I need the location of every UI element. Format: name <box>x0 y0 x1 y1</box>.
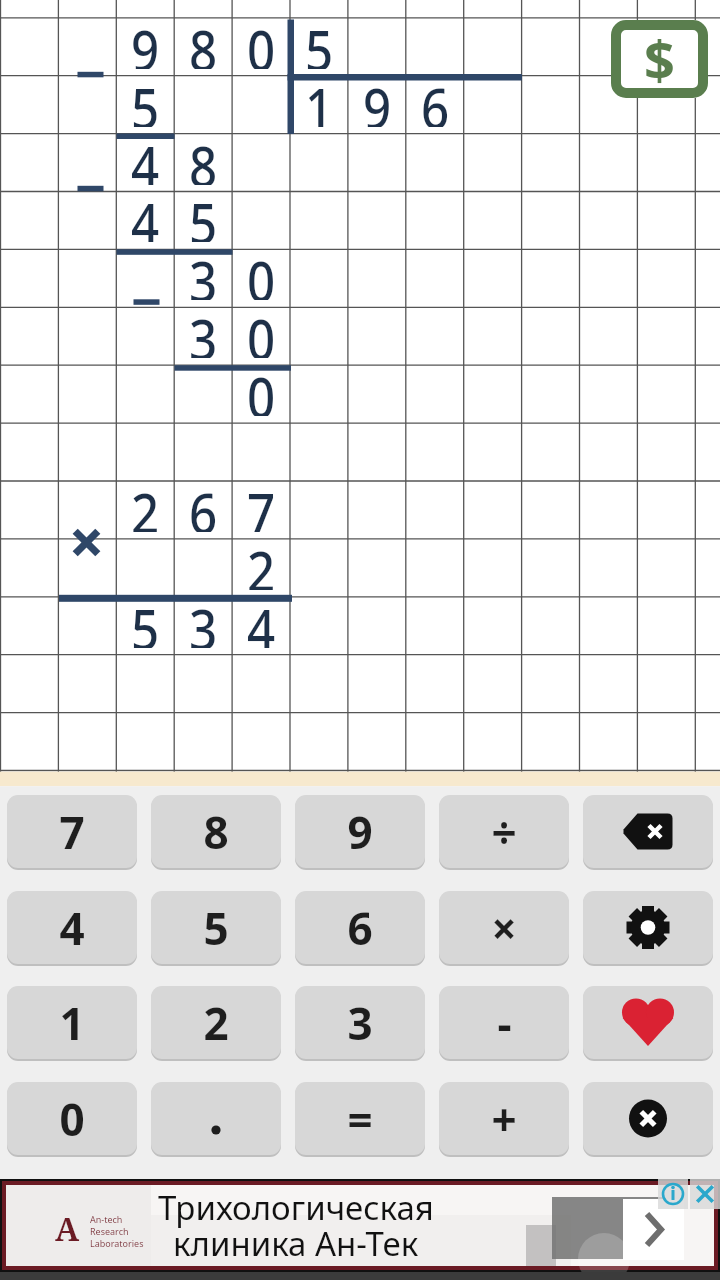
staticText: Laboratories <box>90 1237 144 1249</box>
button[interactable]: 3 <box>295 986 425 1059</box>
button[interactable]: 1 <box>7 986 137 1059</box>
staticText: 4 <box>131 184 160 242</box>
staticText: 8 <box>203 802 229 862</box>
button[interactable]: 9 <box>295 795 425 868</box>
staticText: ÷ <box>491 802 517 862</box>
staticText: $ <box>644 22 675 96</box>
staticText: 3 <box>347 993 373 1053</box>
button[interactable] <box>583 986 713 1059</box>
staticText: 3 <box>189 300 218 358</box>
staticText: 7 <box>59 802 85 862</box>
staticText: 0 <box>247 300 276 358</box>
staticText: - <box>497 993 512 1053</box>
button[interactable]: 8 <box>151 795 281 868</box>
staticText: 5 <box>203 898 229 958</box>
staticText: 5 <box>131 590 160 648</box>
staticText: 9 <box>347 802 373 862</box>
staticText: + <box>491 1089 517 1149</box>
button[interactable] <box>583 795 713 868</box>
staticText: 8 <box>189 127 218 185</box>
button[interactable]: 2 <box>151 986 281 1059</box>
staticText: 4 <box>59 898 85 958</box>
staticText: × <box>491 898 517 958</box>
button[interactable]: 4 <box>7 891 137 964</box>
button[interactable]: 6 <box>295 891 425 964</box>
staticText: 5 <box>305 11 334 69</box>
staticText: Research <box>90 1225 129 1237</box>
button[interactable] <box>690 1179 720 1209</box>
staticText: клиника Ан-Тек <box>173 1221 419 1265</box>
staticText: 1 <box>59 993 85 1053</box>
staticText: 3 <box>189 242 218 300</box>
button[interactable]: 0 <box>7 1082 137 1155</box>
staticText: 6 <box>347 898 373 958</box>
button[interactable] <box>151 1082 281 1155</box>
staticText: 2 <box>203 993 229 1053</box>
staticText: 0 <box>247 358 276 416</box>
staticText: = <box>347 1089 373 1149</box>
staticText: 6 <box>421 69 450 127</box>
button[interactable]: 7 <box>7 795 137 868</box>
staticText: 1 <box>305 69 334 127</box>
button[interactable]: - <box>439 986 569 1059</box>
button[interactable]: + <box>439 1082 569 1155</box>
button[interactable] <box>583 891 713 964</box>
staticText: 7 <box>247 474 276 532</box>
button[interactable]: A <box>6 1185 714 1266</box>
staticText: Трихологическая <box>158 1185 434 1229</box>
staticText: 2 <box>247 532 276 590</box>
button[interactable]: = <box>295 1082 425 1155</box>
button[interactable] <box>658 1179 688 1209</box>
staticText: 2 <box>131 474 160 532</box>
button[interactable] <box>623 1199 684 1260</box>
button[interactable]: 5 <box>151 891 281 964</box>
staticText: 5 <box>189 184 218 242</box>
staticText: 4 <box>131 127 160 185</box>
staticText: 8 <box>189 11 218 69</box>
staticText: 6 <box>189 474 218 532</box>
button[interactable]: $ <box>611 20 708 98</box>
button[interactable]: × <box>439 891 569 964</box>
staticText: 0 <box>59 1089 85 1149</box>
staticText: 0 <box>247 11 276 69</box>
staticText: An-tech <box>90 1213 123 1225</box>
staticText: 9 <box>131 11 160 69</box>
staticText: 3 <box>189 590 218 648</box>
button[interactable]: ÷ <box>439 795 569 868</box>
staticText: 0 <box>247 242 276 300</box>
staticText: 4 <box>247 590 276 648</box>
staticText: A <box>55 1207 80 1251</box>
button[interactable] <box>583 1082 713 1155</box>
staticText: 5 <box>131 69 160 127</box>
staticText: 9 <box>363 69 392 127</box>
